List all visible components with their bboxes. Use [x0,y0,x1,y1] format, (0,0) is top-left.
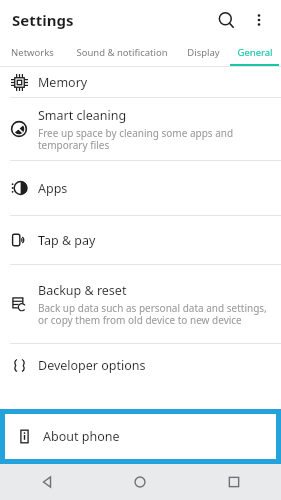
staticText: Backup & reset [38,282,127,299]
staticText: Free up space by cleaning some apps and … [38,126,269,152]
button[interactable]: Tap & pay [0,216,281,264]
staticText: Display [187,46,220,59]
staticText: Smart cleaning [38,107,127,124]
button[interactable]: Sound & notification [64,39,179,66]
staticText: Settings [12,10,74,30]
staticText: Apps [38,180,68,197]
staticText: General [237,46,273,59]
button[interactable]: More options [245,6,273,34]
button[interactable]: Memory [0,67,281,97]
button[interactable]: Home [93,464,187,500]
staticText: Developer options [38,357,146,374]
staticText: Networks [11,46,54,59]
button[interactable]: Recents [187,464,281,500]
button[interactable]: Developer options [0,344,281,387]
button[interactable]: Networks [0,39,64,66]
staticText: Memory [38,74,88,91]
staticText: Tap & pay [38,232,96,249]
button[interactable]: Search [211,5,241,35]
button[interactable]: Back [0,464,93,500]
button[interactable]: Smart cleaning [0,98,281,160]
button[interactable]: About phone [5,414,276,459]
button[interactable]: General [228,39,281,66]
button[interactable]: Apps [0,161,281,215]
button[interactable]: Display [179,39,228,66]
staticText: Sound & notification [76,46,168,59]
staticText: Back up data such as personal data and s… [38,301,269,327]
staticText: About phone [43,428,120,445]
button[interactable]: Backup & reset [0,265,281,343]
